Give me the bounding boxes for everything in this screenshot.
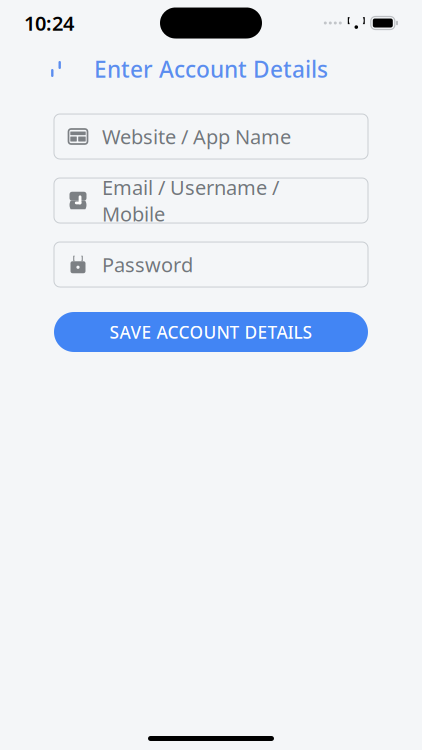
button[interactable]: Back <box>34 47 78 91</box>
staticText: Password <box>102 251 193 278</box>
button[interactable]: Email / Username / Mobile <box>54 178 368 223</box>
button[interactable]: SAVE ACCOUNT DETAILS <box>54 312 368 352</box>
staticText: Enter Account Details <box>94 54 328 84</box>
staticText: Email / Username / Mobile <box>102 174 279 227</box>
button[interactable]: Password <box>54 242 368 287</box>
staticText: Website / App Name <box>102 123 291 150</box>
staticText: 10:24 <box>24 10 74 36</box>
staticText: SAVE ACCOUNT DETAILS <box>109 320 312 343</box>
button[interactable]: Website / App Name <box>54 114 368 159</box>
